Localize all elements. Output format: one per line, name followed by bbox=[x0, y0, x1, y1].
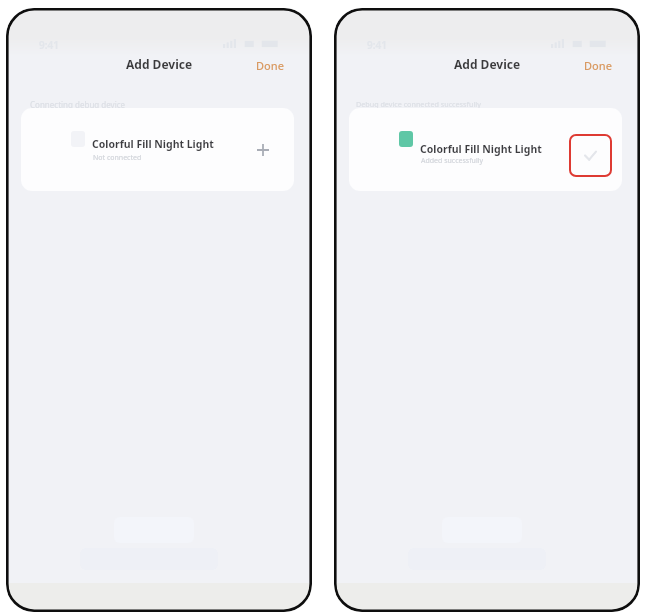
button[interactable]: Add device bbox=[248, 135, 278, 165]
staticText: Add Device bbox=[454, 56, 521, 72]
button[interactable] bbox=[349, 108, 622, 191]
button[interactable]: Confirm added device bbox=[569, 134, 612, 177]
staticText: Add Device bbox=[126, 56, 193, 72]
button[interactable]: Done bbox=[244, 50, 296, 81]
staticText: Colorful Fill Night Light bbox=[92, 137, 214, 151]
button[interactable] bbox=[21, 108, 294, 191]
staticText: Done bbox=[584, 58, 612, 73]
staticText: 9:41 bbox=[367, 38, 393, 52]
staticText: Added successfully bbox=[421, 156, 484, 166]
staticText: Debug device connected successfully bbox=[356, 99, 481, 109]
staticText: Colorful Fill Night Light bbox=[420, 142, 542, 156]
staticText: Not connected bbox=[93, 153, 142, 163]
staticText: Connecting debug device bbox=[30, 99, 126, 110]
button[interactable]: Done bbox=[572, 50, 624, 81]
staticText: Done bbox=[256, 58, 284, 73]
staticText: 9:41 bbox=[39, 38, 65, 52]
